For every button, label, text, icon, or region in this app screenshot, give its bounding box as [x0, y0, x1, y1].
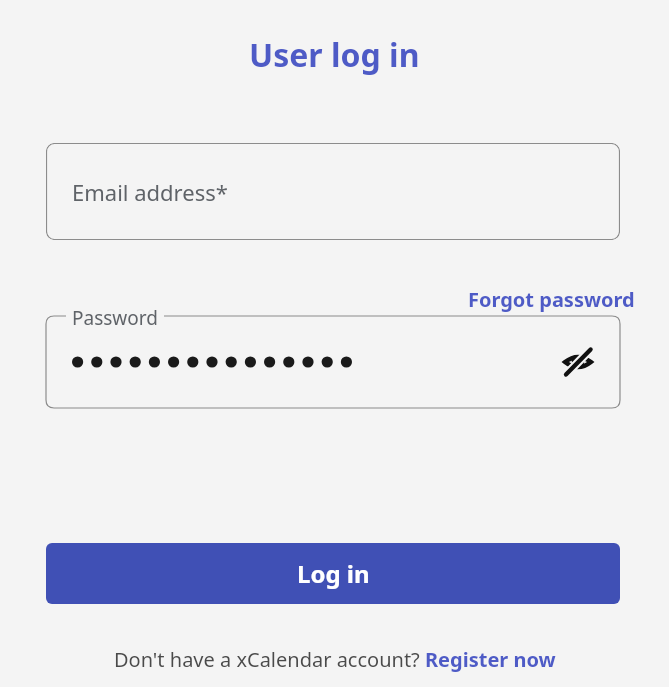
- staticText: Log in: [297, 557, 370, 590]
- button[interactable]: Log in: [46, 543, 620, 604]
- staticText: Don't have a xCalendar account?: [114, 646, 425, 673]
- button[interactable]: Show password: [556, 340, 600, 384]
- button[interactable]: Email address*: [46, 143, 620, 240]
- staticText: Register now: [425, 646, 556, 673]
- staticText: Forgot password: [468, 286, 635, 313]
- staticText: Password: [72, 305, 158, 331]
- button[interactable]: Forgot password: [466, 285, 637, 313]
- button[interactable]: Password: [46, 316, 620, 408]
- staticText: Email address*: [72, 177, 228, 207]
- staticText: User log in: [249, 33, 420, 77]
- button[interactable]: Register now: [425, 646, 556, 673]
